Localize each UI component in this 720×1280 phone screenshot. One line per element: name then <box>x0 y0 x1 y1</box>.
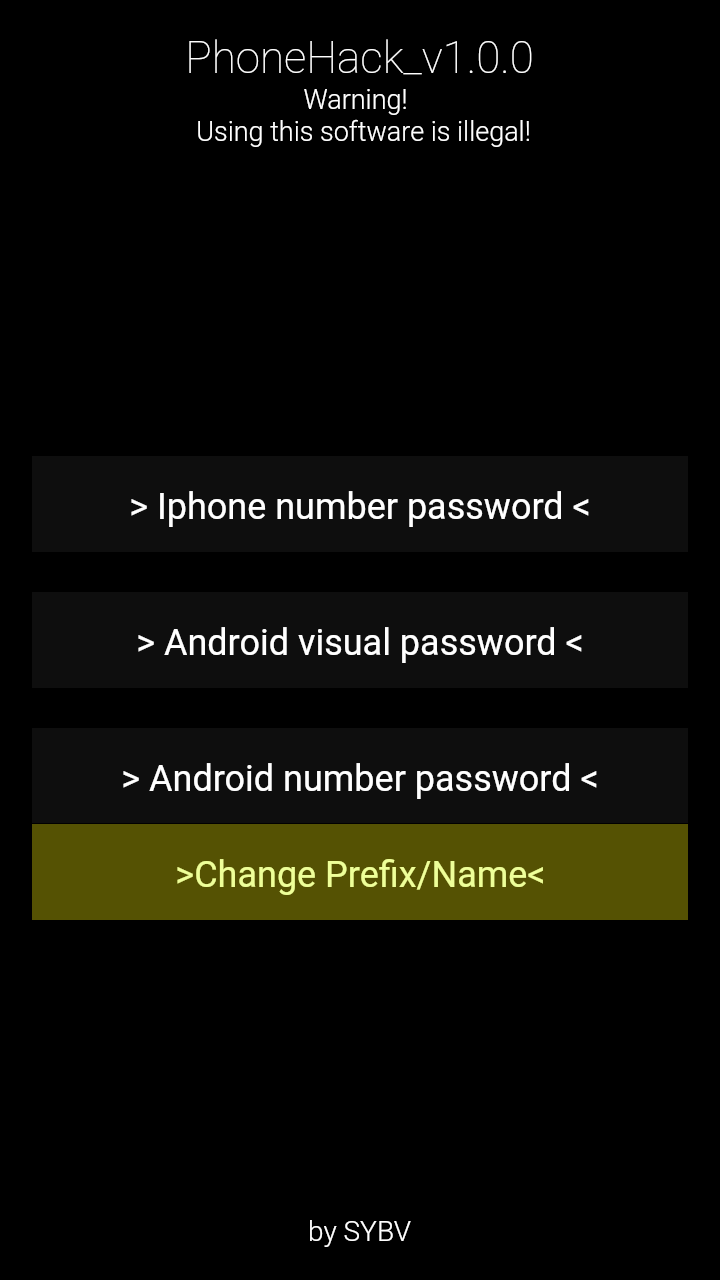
staticText: > Android visual password < <box>136 622 584 664</box>
staticText: Warning! <box>303 84 408 116</box>
button[interactable]: > Android visual password < <box>32 592 688 688</box>
button[interactable]: >Change Prefix/Name< <box>32 824 688 920</box>
staticText: PhoneHack_v1.0.0 <box>185 32 534 84</box>
staticText: > Iphone number password < <box>129 486 591 528</box>
staticText: by SYBV <box>308 1215 411 1248</box>
staticText: > Android number password < <box>121 758 599 800</box>
button[interactable]: > Android number password < <box>32 728 688 823</box>
staticText: >Change Prefix/Name< <box>175 854 546 896</box>
button[interactable]: > Iphone number password < <box>32 456 688 552</box>
staticText: Using this software is illegal! <box>196 116 531 148</box>
